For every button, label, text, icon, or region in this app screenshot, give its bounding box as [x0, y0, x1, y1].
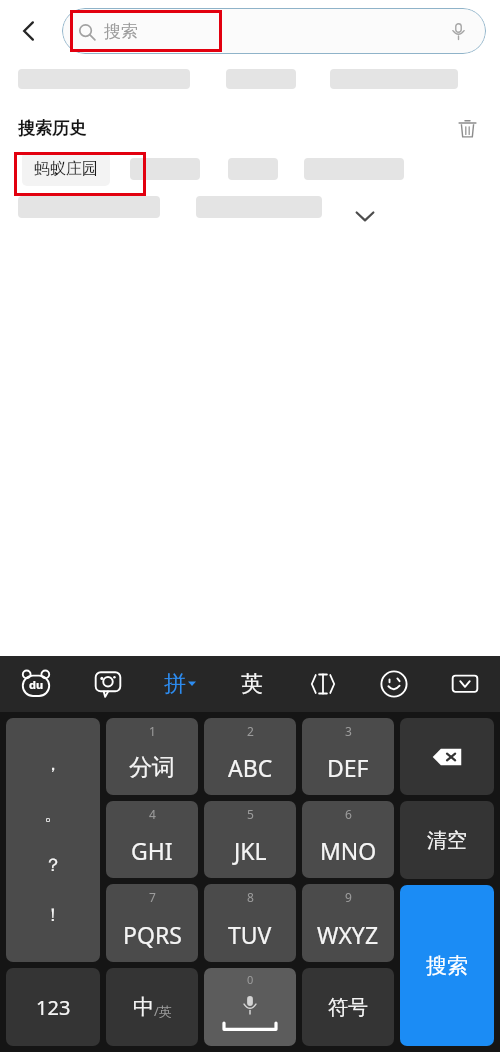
button[interactable]: 9 WXYZ [302, 884, 394, 962]
staticText: 123 [36, 994, 71, 1021]
staticText: du [29, 677, 44, 692]
staticText: ！ [44, 904, 62, 927]
button[interactable]: Backspace [400, 718, 494, 795]
staticText: 英 [241, 670, 263, 698]
button[interactable]: Baidu logo [0, 656, 72, 712]
button[interactable]: Back [6, 8, 52, 54]
staticText: 符号 [328, 995, 368, 1020]
staticText: 搜索 [104, 21, 138, 42]
staticText: MNO [320, 835, 377, 866]
staticText: /英 [154, 1002, 172, 1020]
button[interactable]: Voice [72, 656, 144, 712]
staticText: 中 [133, 994, 154, 1020]
button[interactable]: Cursor control [287, 656, 358, 712]
staticText: ABC [228, 752, 273, 783]
button[interactable]: Space [204, 968, 296, 1046]
staticText: PQRS [123, 919, 182, 950]
staticText: 8 [247, 889, 254, 905]
button[interactable]: Punctuation keys [6, 718, 100, 962]
button[interactable]: Pinyin layout [144, 656, 216, 712]
button[interactable]: Clear search history [452, 113, 482, 143]
staticText: 搜索历史 [18, 118, 86, 139]
button[interactable]: 3 DEF [302, 718, 394, 795]
staticText: 蚂蚁庄园 [34, 159, 98, 179]
staticText: JKL [234, 835, 267, 866]
button[interactable]: 6 MNO [302, 801, 394, 878]
staticText: 搜索 [426, 953, 468, 979]
button[interactable]: Voice search [444, 17, 472, 45]
staticText: 2 [247, 723, 254, 739]
button[interactable]: 搜索 [400, 885, 494, 1046]
staticText: 1 [149, 723, 156, 739]
button[interactable]: 7 PQRS [106, 884, 198, 962]
staticText: 分词 [129, 753, 175, 782]
staticText: 拼 [164, 670, 186, 698]
button[interactable]: 8 TUV [204, 884, 296, 962]
staticText: 。 [44, 803, 62, 826]
button[interactable]: Hide keyboard [429, 656, 500, 712]
button[interactable]: 符号 [302, 968, 394, 1046]
button[interactable]: 蚂蚁庄园 [34, 152, 98, 186]
button[interactable]: Expand history [348, 199, 382, 233]
staticText: 0 [247, 972, 254, 987]
staticText: 7 [149, 889, 156, 905]
button[interactable]: 4 GHI [106, 801, 198, 878]
button[interactable]: 1 分词 [106, 718, 198, 795]
staticText: ？ [44, 854, 62, 877]
staticText: 清空 [427, 828, 467, 853]
staticText: 9 [345, 889, 352, 905]
button[interactable]: Chinese English toggle [106, 968, 198, 1046]
staticText: 5 [247, 806, 254, 822]
button[interactable]: English layout [216, 656, 287, 712]
button[interactable]: 搜索 [62, 8, 486, 54]
staticText: 4 [149, 806, 156, 822]
button[interactable]: 123 [6, 968, 100, 1046]
staticText: 3 [345, 723, 352, 739]
staticText: TUV [228, 919, 272, 950]
button[interactable]: 2 ABC [204, 718, 296, 795]
button[interactable]: 5 JKL [204, 801, 296, 878]
staticText: GHI [131, 835, 173, 866]
staticText: 6 [345, 806, 352, 822]
button[interactable]: 清空 [400, 801, 494, 879]
staticText: ， [44, 753, 62, 776]
staticText: DEF [327, 752, 369, 783]
staticText: WXYZ [317, 919, 379, 950]
button[interactable]: Emoji [358, 656, 429, 712]
